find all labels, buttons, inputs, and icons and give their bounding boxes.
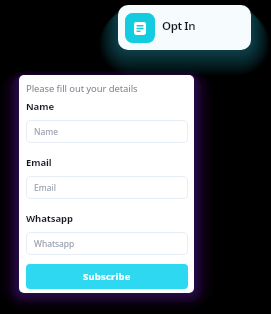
staticText: Whatsapp bbox=[26, 212, 73, 225]
staticText: Name bbox=[34, 126, 58, 138]
button[interactable]: Whatsapp bbox=[26, 232, 188, 255]
staticText: Email bbox=[34, 182, 56, 194]
button[interactable]: Email bbox=[26, 176, 188, 199]
other: Opt in form bbox=[125, 13, 155, 43]
staticText: Name bbox=[26, 100, 54, 113]
staticText: Opt In bbox=[162, 18, 196, 34]
staticText: Whatsapp bbox=[34, 238, 75, 250]
staticText: Subscribe bbox=[83, 270, 131, 283]
staticText: Please fill out your details bbox=[26, 82, 138, 95]
staticText: Email bbox=[26, 156, 52, 169]
button[interactable]: Name bbox=[26, 120, 188, 143]
button[interactable]: Opt in form bbox=[118, 5, 251, 50]
button[interactable]: Subscribe bbox=[26, 264, 188, 289]
